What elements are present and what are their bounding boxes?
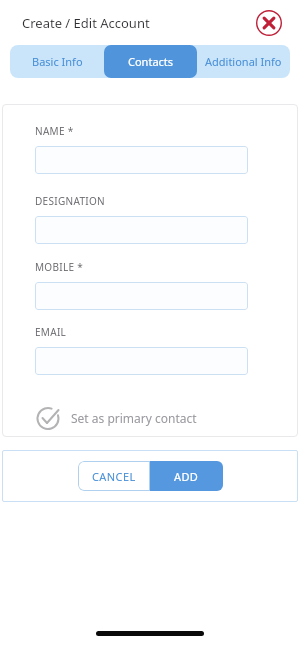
- staticText: Create / Edit Account: [22, 14, 150, 32]
- button[interactable]: Basic Info: [10, 45, 104, 78]
- button[interactable]: [255, 9, 283, 37]
- staticText: Basic Info: [32, 54, 83, 69]
- button[interactable]: ADD: [150, 461, 223, 491]
- button[interactable]: Contacts: [104, 45, 197, 78]
- staticText: DESIGNATION: [35, 194, 105, 208]
- button[interactable]: Additional Info: [197, 45, 290, 78]
- button[interactable]: Set as primary contact: [37, 406, 197, 430]
- button[interactable]: CANCEL: [78, 461, 150, 491]
- staticText: Additional Info: [205, 54, 282, 69]
- button[interactable]: [35, 146, 248, 174]
- staticText: CANCEL: [92, 469, 136, 484]
- staticText: Contacts: [128, 54, 174, 69]
- staticText: Set as primary contact: [71, 410, 197, 426]
- button[interactable]: [35, 282, 248, 310]
- staticText: MOBILE *: [35, 260, 84, 274]
- staticText: ADD: [174, 469, 199, 484]
- staticText: NAME *: [35, 124, 74, 138]
- button[interactable]: [35, 347, 248, 375]
- staticText: EMAIL: [35, 325, 67, 339]
- button[interactable]: [35, 216, 248, 244]
